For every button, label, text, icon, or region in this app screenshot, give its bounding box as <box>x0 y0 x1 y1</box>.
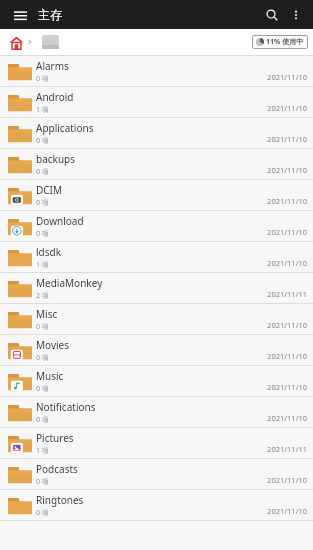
staticText: 0 项 <box>36 477 49 487</box>
staticText: 0 项 <box>36 74 49 84</box>
button[interactable]: Music <box>0 366 313 397</box>
staticText: 0 项 <box>36 415 49 425</box>
staticText: 2021/11/10 <box>267 196 307 206</box>
staticText: 主存 <box>38 7 62 22</box>
staticText: 2021/11/11 <box>267 289 307 299</box>
staticText: 0 项 <box>36 167 49 177</box>
staticText: backups <box>36 152 76 166</box>
staticText: 1 项 <box>36 446 49 456</box>
staticText: 2021/11/10 <box>267 72 307 82</box>
button[interactable]: Pictures <box>0 428 313 459</box>
staticText: 2021/11/10 <box>267 134 307 144</box>
staticText: 1 项 <box>36 105 49 115</box>
button[interactable]: backups <box>0 149 313 180</box>
staticText: Android <box>36 90 74 104</box>
button[interactable]: Ringtones <box>0 490 313 521</box>
staticText: Ringtones <box>36 493 84 507</box>
button[interactable]: Podcasts <box>0 459 313 490</box>
staticText: Applications <box>36 121 94 135</box>
staticText: 0 项 <box>36 384 49 394</box>
staticText: 2021/11/10 <box>267 382 307 392</box>
button[interactable]: MediaMonkey <box>0 273 313 304</box>
staticText: 0 项 <box>36 198 49 208</box>
button[interactable]: Movies <box>0 335 313 366</box>
staticText: Notifications <box>36 400 96 414</box>
staticText: DCIM <box>36 183 63 197</box>
button[interactable]: Alarms <box>0 56 313 87</box>
button[interactable]: Applications <box>0 118 313 149</box>
button[interactable]: DCIM <box>0 180 313 211</box>
staticText: Movies <box>36 338 70 352</box>
staticText: 2 项 <box>36 291 49 301</box>
staticText: MediaMonkey <box>36 276 103 290</box>
staticText: 2021/11/10 <box>267 320 307 330</box>
staticText: 2021/11/10 <box>267 351 307 361</box>
staticText: Download <box>36 214 84 228</box>
staticText: 2021/11/10 <box>267 506 307 516</box>
button[interactable]: Menu <box>9 4 31 26</box>
staticText: Podcasts <box>36 462 78 476</box>
button[interactable]: Home <box>6 32 26 52</box>
staticText: 0 项 <box>36 136 49 146</box>
staticText: 2021/11/11 <box>267 444 307 454</box>
button[interactable]: ldsdk <box>0 242 313 273</box>
staticText: 2021/11/10 <box>267 103 307 113</box>
staticText: 0 项 <box>36 353 49 363</box>
button[interactable]: Android <box>0 87 313 118</box>
staticText: Pictures <box>36 431 74 445</box>
button[interactable]: Search <box>260 3 284 27</box>
staticText: ldsdk <box>36 245 62 259</box>
button[interactable]: Download <box>0 211 313 242</box>
button[interactable]: Notifications <box>0 397 313 428</box>
staticText: 0 项 <box>36 229 49 239</box>
button[interactable]: Internal storage <box>36 32 64 52</box>
staticText: 0 项 <box>36 322 49 332</box>
button[interactable]: More options <box>285 4 307 26</box>
staticText: Alarms <box>36 59 69 73</box>
staticText: 0 项 <box>36 508 49 518</box>
staticText: 2021/11/10 <box>267 413 307 423</box>
staticText: 2021/11/10 <box>267 227 307 237</box>
staticText: Misc <box>36 307 58 321</box>
staticText: 2021/11/10 <box>267 165 307 175</box>
staticText: Music <box>36 369 64 383</box>
staticText: 2021/11/10 <box>267 475 307 485</box>
staticText: 11% 使用中 <box>266 37 304 47</box>
staticText: 1 项 <box>36 260 49 270</box>
button[interactable]: Misc <box>0 304 313 335</box>
staticText: 2021/11/10 <box>267 258 307 268</box>
button[interactable]: 11% 使用中 <box>256 37 304 47</box>
